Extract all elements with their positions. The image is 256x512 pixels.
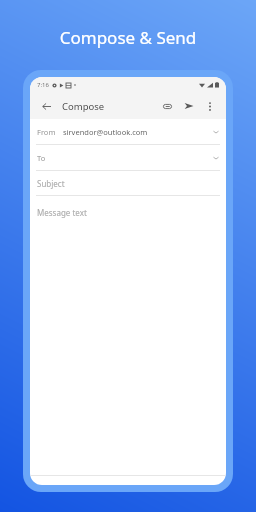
staticText: From <box>37 127 56 137</box>
staticText: sirvendor@outlook.com <box>63 127 148 137</box>
button[interactable]: Send <box>181 98 197 114</box>
button[interactable]: More options <box>202 98 218 114</box>
staticText: Message text <box>37 207 87 218</box>
button[interactable]: Message text <box>30 200 226 224</box>
button[interactable]: From <box>30 119 226 144</box>
staticText: Compose <box>62 100 105 113</box>
button[interactable]: Back <box>38 98 54 114</box>
staticText: Subject <box>37 178 65 189</box>
staticText: 7:16 <box>37 81 49 89</box>
button[interactable]: Subject <box>30 171 226 195</box>
button[interactable]: To <box>30 145 226 170</box>
staticText: To <box>37 153 46 163</box>
button[interactable]: Attach file <box>159 98 175 114</box>
staticText: Compose & Send <box>0 26 256 49</box>
